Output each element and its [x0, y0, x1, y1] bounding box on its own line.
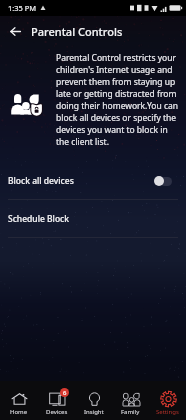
- button[interactable]: 6: [38, 381, 75, 420]
- button[interactable]: Block all devices: [0, 162, 186, 199]
- staticText: 6: [63, 389, 67, 397]
- staticText: Block all devices: [8, 175, 74, 187]
- button[interactable]: Schedule Block: [0, 200, 186, 237]
- staticText: Settings: [156, 408, 179, 416]
- button[interactable]: Settings: [149, 381, 186, 420]
- button[interactable]: Family: [112, 381, 149, 420]
- staticText: Insight: [84, 408, 104, 416]
- button[interactable]: Back: [0, 16, 30, 46]
- staticText: Family: [121, 408, 140, 416]
- staticText: Home: [10, 408, 28, 416]
- staticText: 1:35 PM: [8, 3, 37, 13]
- staticText: Schedule Block: [8, 213, 70, 225]
- staticText: Parental Control restricts your children…: [56, 52, 182, 148]
- button[interactable]: Insight: [75, 381, 112, 420]
- button[interactable]: Home: [0, 381, 38, 420]
- staticText: Parental Controls: [31, 24, 123, 39]
- staticText: Devices: [46, 408, 68, 416]
